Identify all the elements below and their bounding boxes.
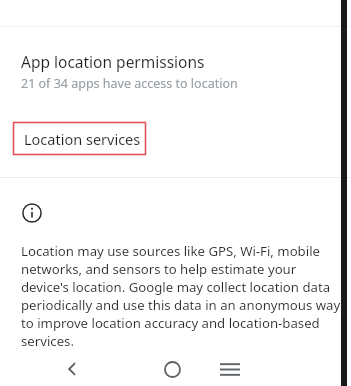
staticText: Apps with the Nearby devices permission …: [21, 359, 341, 386]
button[interactable]: Recent apps: [201, 352, 351, 386]
button[interactable]: Location services: [13, 122, 146, 155]
button[interactable]: Home: [143, 352, 201, 386]
staticText: Location services: [24, 129, 141, 149]
button[interactable]: Back: [0, 352, 143, 386]
button[interactable]: App location permissions: [0, 49, 351, 98]
staticText: 21 of 34 apps have access to location: [21, 75, 238, 92]
staticText: Location may use sources like GPS, Wi-Fi…: [21, 242, 341, 350]
other: Information: [22, 203, 42, 223]
staticText: App location permissions: [21, 51, 205, 72]
